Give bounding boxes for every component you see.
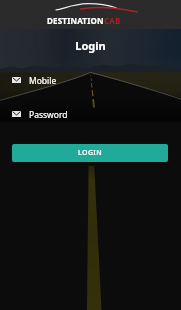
staticText: DESTINATION <box>47 15 104 26</box>
button[interactable]: Mobile <box>12 75 181 85</box>
button[interactable]: LOGIN <box>12 144 168 162</box>
staticText: Password <box>29 109 68 119</box>
staticText: CAB <box>104 15 121 26</box>
button[interactable]: Password <box>12 109 181 119</box>
staticText: Login <box>0 38 181 53</box>
staticText: LOGIN <box>78 148 103 158</box>
staticText: Mobile <box>29 75 57 85</box>
